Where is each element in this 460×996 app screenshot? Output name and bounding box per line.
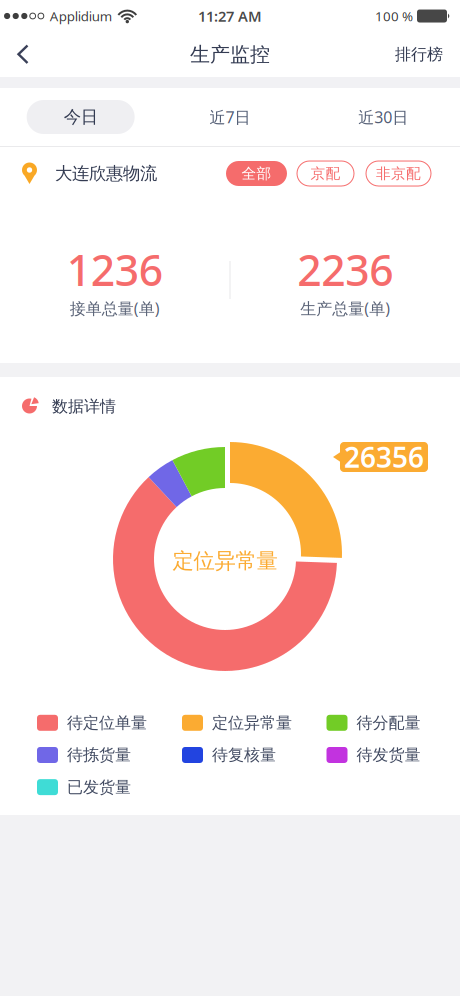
staticText: 接单总量(单) <box>70 298 160 319</box>
staticText: 已发货量 <box>67 777 131 797</box>
staticText: 待拣货量 <box>67 745 131 765</box>
staticText: 11:27 AM <box>198 6 262 26</box>
staticText: 定位异常量 <box>212 713 292 733</box>
staticText: 全部 <box>241 164 271 182</box>
button[interactable]: 排行榜 <box>395 45 460 64</box>
staticText: 2236 <box>297 241 393 298</box>
staticText: 待复核量 <box>212 745 276 765</box>
staticText: 排行榜 <box>395 45 443 64</box>
button[interactable]: 全部 <box>226 161 287 186</box>
staticText: 今日 <box>64 106 98 128</box>
staticText: 待发货量 <box>356 745 420 765</box>
button[interactable]: 近7日 <box>153 88 307 146</box>
staticText: 近30日 <box>358 106 408 128</box>
staticText: 近7日 <box>209 106 250 128</box>
staticText: 京配 <box>310 164 340 182</box>
button[interactable]: 今日 <box>23 100 131 134</box>
staticText: 26356 <box>344 438 424 476</box>
button[interactable]: 近30日 <box>307 88 460 146</box>
staticText: 待定位单量 <box>67 713 147 733</box>
staticText: 生产监控 <box>190 42 270 67</box>
staticText: 生产总量(单) <box>300 298 390 319</box>
staticText: 100 % <box>375 7 413 25</box>
staticText: 定位异常量 <box>172 548 277 574</box>
button[interactable]: 非京配 <box>366 161 431 186</box>
staticText: Applidium <box>50 7 112 25</box>
staticText: 非京配 <box>376 164 421 182</box>
button[interactable]: 京配 <box>297 161 354 186</box>
staticText: 数据详情 <box>52 397 116 416</box>
button[interactable] <box>0 41 42 67</box>
staticText: 1236 <box>67 241 163 298</box>
staticText: 待分配量 <box>356 713 420 733</box>
staticText: 大连欣惠物流 <box>55 163 157 184</box>
